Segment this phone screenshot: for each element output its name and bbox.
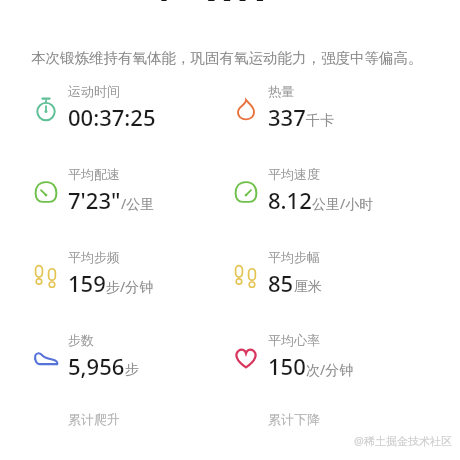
other: Average pace: [28, 166, 64, 214]
staticText: 运动时间: [68, 83, 120, 99]
staticText: @稀土掘金技术社区: [354, 433, 452, 448]
staticText: 159: [68, 268, 106, 298]
button[interactable]: Average pace: [28, 166, 225, 215]
staticText: 00:37:25: [68, 102, 156, 132]
staticText: 公里/小时: [312, 194, 374, 213]
staticText: 150: [268, 351, 306, 381]
button[interactable]: Average cadence: [28, 249, 225, 298]
staticText: 5,956: [68, 351, 125, 381]
button[interactable]: Average speed: [228, 166, 460, 215]
staticText: 步数: [68, 332, 94, 348]
other: Steps: [28, 332, 64, 380]
other: Average cadence: [28, 249, 64, 297]
button[interactable]: Duration: [28, 83, 225, 132]
other: Average heart rate: [228, 332, 264, 380]
staticText: 热量: [268, 83, 294, 99]
staticText: 步/分钟: [106, 277, 154, 296]
staticText: 8.12: [268, 185, 312, 215]
staticText: 平均配速: [68, 166, 120, 182]
button[interactable]: Calories: [228, 83, 460, 132]
staticText: 平均速度: [268, 166, 320, 182]
staticText: 平均步幅: [268, 249, 320, 265]
other: Duration: [28, 83, 64, 131]
staticText: 步: [125, 361, 139, 379]
other: Calories: [228, 83, 264, 131]
button[interactable]: Average heart rate: [228, 332, 460, 381]
staticText: 平均心率: [268, 332, 320, 348]
staticText: 累计下降: [268, 411, 320, 427]
button[interactable]: Steps: [28, 332, 225, 381]
staticText: 7'23": [68, 185, 121, 215]
other: Average speed: [228, 166, 264, 214]
button[interactable]: Average stride: [228, 249, 460, 298]
staticText: 85: [268, 268, 294, 298]
staticText: /公里: [121, 194, 155, 213]
staticText: 5.08: [156, 0, 268, 1]
staticText: 次/分钟: [306, 360, 354, 379]
staticText: 厘米: [294, 278, 322, 296]
staticText: 本次锻炼维持有氧体能，巩固有氧运动能力，强度中等偏高。: [31, 49, 423, 67]
other: Average stride: [228, 249, 264, 297]
staticText: 平均步频: [68, 249, 120, 265]
staticText: 千卡: [306, 112, 334, 130]
staticText: 337: [268, 102, 306, 132]
staticText: 累计爬升: [68, 411, 120, 427]
